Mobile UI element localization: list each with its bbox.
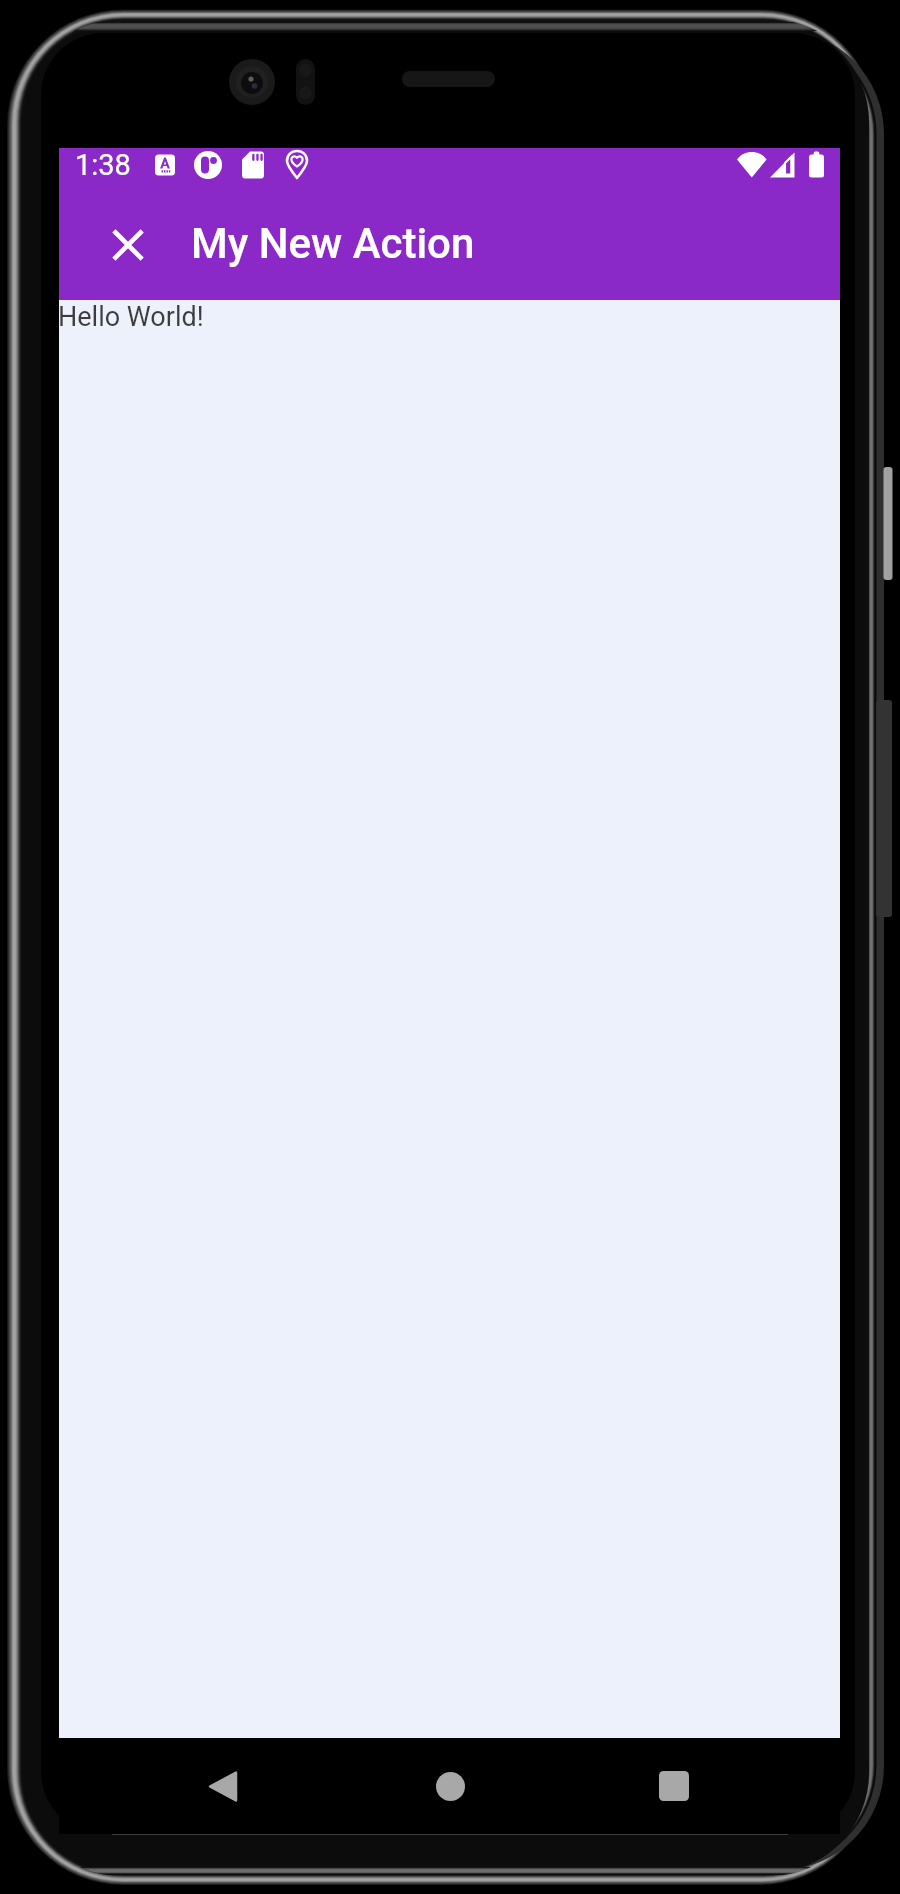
staticText: Hello World!	[58, 301, 204, 333]
button[interactable]: Home	[412, 1748, 488, 1824]
button[interactable]: Back	[185, 1748, 261, 1824]
staticText: My New Action	[191, 219, 475, 268]
button[interactable]: Close	[104, 221, 152, 269]
staticText: 1:38	[75, 148, 131, 182]
button[interactable]: Recent apps	[636, 1748, 712, 1824]
